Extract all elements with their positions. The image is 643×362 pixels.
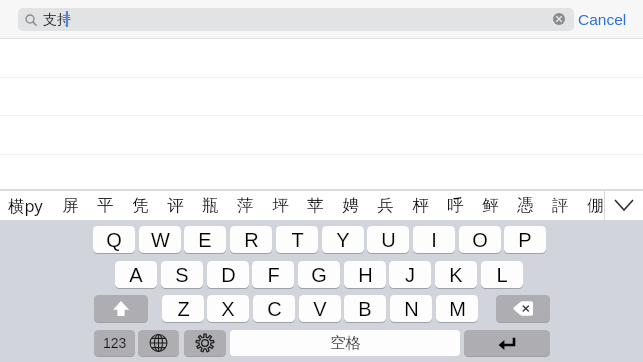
staticText: 横py [8, 194, 43, 217]
button[interactable]: T [276, 226, 318, 253]
staticText: 苹 [307, 195, 324, 216]
button[interactable]: 评 [158, 189, 193, 220]
button[interactable]: 評 [543, 189, 578, 220]
staticText: 評 [552, 195, 569, 216]
staticText: 枰 [412, 195, 429, 216]
button[interactable]: 凭 [123, 189, 158, 220]
staticText: A [129, 264, 143, 286]
button[interactable]: 鲆 [473, 189, 508, 220]
button[interactable]: Cancel [578, 0, 628, 38]
staticText: 坪 [272, 195, 289, 216]
staticText: 萍 [237, 195, 254, 216]
staticText: U [381, 229, 396, 251]
button[interactable]: 倗 [578, 189, 613, 220]
button[interactable]: V [299, 295, 341, 322]
button[interactable]: 萍 [228, 189, 263, 220]
staticText: 憑 [517, 195, 534, 216]
button[interactable]: L [481, 261, 523, 288]
button[interactable]: Expand candidates [605, 189, 643, 220]
staticText: T [291, 229, 304, 251]
button[interactable]: P [504, 226, 546, 253]
staticText: 娉 [342, 195, 359, 216]
button[interactable]: Shift [94, 295, 148, 322]
staticText: 评 [167, 195, 184, 216]
button[interactable]: 支持 [18, 8, 574, 31]
staticText: H [358, 264, 373, 286]
button[interactable]: 呼 [438, 189, 473, 220]
button[interactable]: 兵 [368, 189, 403, 220]
button[interactable]: 平 [88, 189, 123, 220]
button[interactable]: Return [464, 330, 550, 356]
button[interactable]: 坪 [263, 189, 298, 220]
button[interactable]: M [436, 295, 478, 322]
button[interactable]: X [207, 295, 249, 322]
staticText: O [472, 229, 488, 251]
button[interactable]: 娉 [333, 189, 368, 220]
staticText: G [311, 264, 327, 286]
button[interactable]: 苹 [298, 189, 333, 220]
staticText: 凭 [132, 195, 149, 216]
staticText: Q [106, 229, 122, 251]
staticText: C [267, 298, 282, 320]
button[interactable]: 憑 [508, 189, 543, 220]
staticText: 平 [97, 195, 114, 216]
staticText: E [198, 229, 212, 251]
button[interactable]: G [298, 261, 340, 288]
staticText: D [221, 264, 236, 286]
staticText: K [449, 264, 463, 286]
button[interactable]: B [344, 295, 386, 322]
button[interactable]: 屏 [53, 189, 88, 220]
button[interactable]: Delete [496, 295, 550, 322]
staticText: Z [177, 298, 190, 320]
staticText: F [267, 264, 280, 286]
button[interactable]: O [459, 226, 501, 253]
button[interactable]: Y [322, 226, 364, 253]
staticText: 123 [103, 335, 127, 351]
button[interactable]: C [253, 295, 295, 322]
staticText: 兵 [377, 195, 394, 216]
staticText: Cancel [578, 11, 627, 28]
staticText: L [496, 264, 508, 286]
staticText: J [405, 264, 415, 286]
button[interactable]: Next keyboard [138, 330, 179, 356]
staticText: Y [336, 229, 350, 251]
staticText: I [431, 229, 437, 251]
button[interactable]: K [435, 261, 477, 288]
button[interactable]: Clear text [553, 13, 565, 25]
button[interactable]: I [413, 226, 455, 253]
button[interactable]: E [184, 226, 226, 253]
staticText: 支持 [43, 11, 71, 29]
staticText: W [151, 229, 170, 251]
staticText: P [518, 229, 532, 251]
staticText: 空格 [330, 333, 361, 353]
staticText: 呼 [447, 195, 464, 216]
staticText: M [449, 298, 466, 320]
staticText: V [313, 298, 327, 320]
staticText: S [175, 264, 189, 286]
staticText: X [221, 298, 235, 320]
staticText: 瓶 [202, 195, 219, 216]
staticText: 屏 [62, 195, 79, 216]
button[interactable]: 横py [0, 189, 51, 220]
button[interactable]: 枰 [403, 189, 438, 220]
button[interactable]: S [161, 261, 203, 288]
button[interactable]: W [139, 226, 181, 253]
button[interactable]: J [389, 261, 431, 288]
staticText: 倗 [587, 195, 604, 216]
button[interactable]: A [115, 261, 157, 288]
button[interactable]: 瓶 [193, 189, 228, 220]
button[interactable]: U [367, 226, 409, 253]
button[interactable]: D [207, 261, 249, 288]
staticText: 鲆 [482, 195, 499, 216]
staticText: R [244, 229, 259, 251]
button[interactable]: R [230, 226, 272, 253]
button[interactable]: Q [93, 226, 135, 253]
staticText: B [358, 298, 372, 320]
button[interactable]: N [390, 295, 432, 322]
button[interactable] [94, 330, 135, 356]
button[interactable]: Keyboard settings [184, 330, 226, 356]
button[interactable]: 空格 [230, 330, 460, 356]
button[interactable]: Z [162, 295, 204, 322]
button[interactable]: H [344, 261, 386, 288]
button[interactable]: F [252, 261, 294, 288]
